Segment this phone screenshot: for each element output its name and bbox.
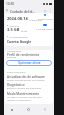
staticText: ❮ — [44, 108, 47, 111]
button[interactable]: More options — [48, 8, 53, 13]
button[interactable]: Back — [37, 104, 54, 115]
staticText: Protege tu información personal mientras — [7, 96, 51, 99]
staticText: Cuenta Google — [7, 39, 32, 43]
staticText: Buscar actualizaciones de software — [7, 79, 45, 82]
button[interactable]: Modo Mantenimiento — [5, 92, 53, 102]
button[interactable]: Actualización de software — [5, 75, 53, 82]
staticText: Actualizado — [29, 18, 42, 21]
staticText: Actualización de software — [7, 75, 45, 79]
button[interactable]: Home — [20, 104, 37, 115]
staticText: Estándar — [7, 56, 17, 59]
button[interactable]: Recent apps — [4, 104, 20, 115]
staticText: Memoria — [9, 24, 20, 27]
button[interactable]: Search — [43, 8, 48, 13]
staticText: Optimización — [7, 50, 22, 53]
staticText: 2.8/6 GB usados — [36, 28, 53, 31]
staticText: Revisar el estado del dispositivo — [7, 87, 42, 90]
staticText: 10:30 — [6, 2, 15, 6]
button[interactable]: Back — [5, 8, 10, 13]
staticText: Diagnóstico — [7, 83, 25, 87]
button[interactable]: Diagnóstico — [5, 83, 53, 90]
button[interactable]: 2024-08-14 — [5, 13, 53, 46]
staticText: Cuidado del di... — [10, 9, 36, 13]
staticText: 2024-08-14 — [7, 16, 28, 21]
staticText: Perfil de rendimiento — [7, 53, 40, 57]
staticText: ○ — [44, 9, 47, 12]
staticText: 3.5 GB — [7, 27, 20, 32]
staticText: ⋮ — [49, 9, 53, 13]
staticText: reparan tu dispositivo — [7, 99, 31, 102]
staticText: Almacenamiento — [9, 35, 29, 38]
staticText: Cuenta Samsung — [7, 71, 26, 74]
staticText: Optimizar ahora — [18, 61, 41, 65]
button[interactable] — [43, 24, 47, 26]
staticText: Estado: Bueno — [38, 18, 53, 21]
staticText: ❮ — [6, 9, 9, 12]
staticText: Modo Mantenimiento — [7, 92, 40, 96]
button[interactable]: Optimizar ahora — [6, 60, 52, 66]
staticText: libres — [21, 29, 28, 32]
